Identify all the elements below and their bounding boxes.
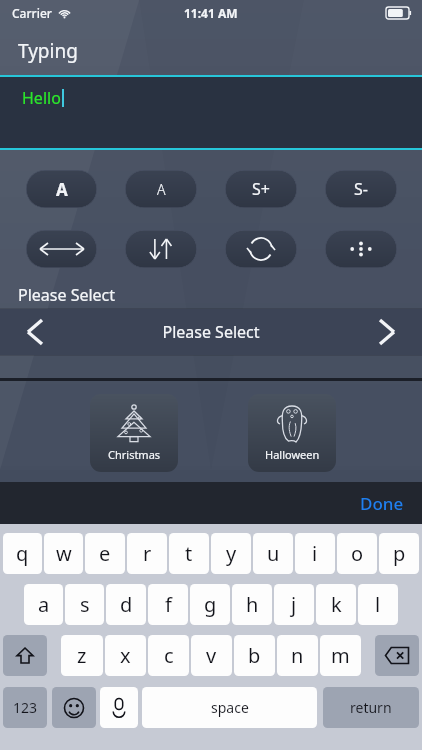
button[interactable]: k <box>316 584 356 625</box>
button[interactable]: o <box>337 533 377 574</box>
staticText: i <box>312 540 318 567</box>
button[interactable]: f <box>148 584 188 625</box>
button[interactable]: t <box>169 533 209 574</box>
staticText: s <box>80 591 90 618</box>
staticText: l <box>375 591 381 618</box>
staticText: r <box>143 540 152 567</box>
staticText: Carrier <box>12 5 52 21</box>
button[interactable]: c <box>148 635 189 676</box>
staticText: j <box>291 591 297 618</box>
staticText: b <box>248 642 261 669</box>
button[interactable]: Done <box>350 486 414 521</box>
button[interactable]: w <box>44 533 83 574</box>
staticText: c <box>164 642 174 669</box>
button[interactable]: Move up down <box>125 230 197 268</box>
button[interactable]: h <box>232 584 272 625</box>
button[interactable]: x <box>105 635 146 676</box>
button[interactable]: Halloween <box>248 394 336 472</box>
button[interactable]: Dictate <box>100 687 138 728</box>
staticText: return <box>350 698 392 717</box>
staticText: Christmas <box>108 447 161 462</box>
button[interactable]: p <box>379 533 419 574</box>
staticText: Please Select <box>162 321 260 343</box>
button[interactable]: Christmas <box>90 394 178 472</box>
staticText: o <box>351 540 364 567</box>
staticText: 11:41 AM <box>184 5 238 21</box>
staticText: 123 <box>13 698 38 717</box>
button[interactable]: 123 <box>3 687 47 728</box>
button[interactable]: r <box>127 533 167 574</box>
button[interactable]: More options <box>325 230 397 268</box>
button[interactable]: l <box>358 584 398 625</box>
button[interactable]: space <box>142 687 317 728</box>
button[interactable]: Emoji <box>52 687 96 728</box>
button[interactable]: u <box>253 533 293 574</box>
button[interactable]: b <box>234 635 275 676</box>
button[interactable]: return <box>323 687 419 728</box>
button[interactable]: Next <box>352 309 422 355</box>
button[interactable]: j <box>274 584 314 625</box>
staticText: x <box>120 642 131 669</box>
staticText: w <box>56 540 72 567</box>
button[interactable]: e <box>85 533 125 574</box>
button[interactable]: n <box>277 635 318 676</box>
button[interactable]: Previous <box>0 309 70 355</box>
staticText: space <box>211 698 249 717</box>
button[interactable]: Rotate <box>225 230 297 268</box>
button[interactable]: Move left right <box>26 230 97 268</box>
staticText: A <box>157 180 166 199</box>
staticText: h <box>246 591 259 618</box>
staticText: e <box>99 540 111 567</box>
staticText: p <box>393 540 406 567</box>
button[interactable]: v <box>191 635 232 676</box>
staticText: q <box>16 540 29 567</box>
button[interactable]: q <box>3 533 42 574</box>
staticText: t <box>185 540 193 567</box>
button[interactable]: Shift <box>3 635 47 676</box>
button[interactable]: A <box>26 170 97 208</box>
staticText: n <box>291 642 304 669</box>
staticText: z <box>77 642 87 669</box>
button[interactable]: z <box>61 635 103 676</box>
button[interactable]: y <box>211 533 251 574</box>
button[interactable]: s <box>65 584 104 625</box>
staticText: Halloween <box>265 447 320 462</box>
staticText: y <box>226 540 237 567</box>
button[interactable]: m <box>320 635 361 676</box>
button[interactable]: i <box>295 533 335 574</box>
staticText: g <box>204 591 217 618</box>
staticText: Done <box>360 492 404 515</box>
button[interactable]: S+ <box>225 170 297 208</box>
staticText: Please Select <box>18 284 116 306</box>
staticText: S- <box>354 178 368 200</box>
staticText: A <box>56 178 68 201</box>
staticText: S+ <box>252 178 270 200</box>
staticText: d <box>120 591 133 618</box>
button[interactable]: d <box>106 584 146 625</box>
staticText: k <box>331 591 342 618</box>
button[interactable]: A <box>125 170 197 208</box>
button[interactable]: g <box>190 584 230 625</box>
button[interactable]: S- <box>325 170 397 208</box>
staticText: Hello <box>22 87 61 109</box>
button[interactable]: Backspace <box>375 635 419 676</box>
staticText: v <box>206 642 217 669</box>
staticText: u <box>267 540 280 567</box>
staticText: f <box>165 591 172 618</box>
staticText: a <box>38 591 50 618</box>
staticText: Typing <box>18 38 78 64</box>
button[interactable]: a <box>24 584 63 625</box>
staticText: m <box>331 642 350 669</box>
